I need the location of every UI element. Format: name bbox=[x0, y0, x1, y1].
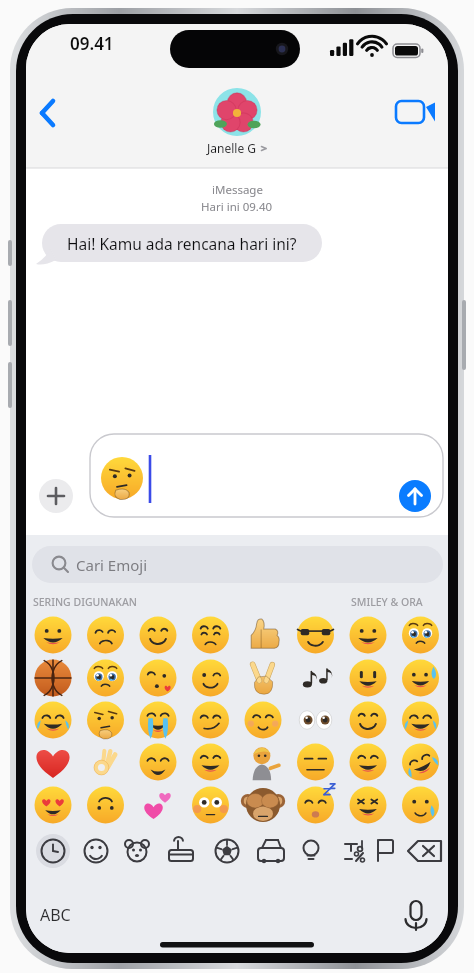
staticText: Hai! Kamu ada rencana hari ini? bbox=[67, 233, 297, 254]
button[interactable]: Back bbox=[28, 96, 64, 132]
staticText: 09.41 bbox=[70, 32, 114, 55]
button[interactable]: FaceTime video call bbox=[392, 96, 436, 130]
button[interactable]: Dictation bbox=[398, 896, 434, 932]
button[interactable]: Hai! Kamu ada rencana hari ini? bbox=[42, 224, 322, 262]
staticText: SMILEY & ORA bbox=[351, 595, 423, 609]
button[interactable]: Cari Emoji bbox=[32, 546, 443, 583]
button[interactable]: Send bbox=[399, 480, 431, 512]
staticText: iMessage bbox=[212, 182, 263, 198]
button[interactable]: Recently used emoji bbox=[36, 834, 70, 868]
button[interactable]: Animals and nature bbox=[120, 834, 154, 868]
staticText: Janelle G bbox=[207, 140, 257, 156]
staticText: ABC bbox=[40, 904, 71, 926]
staticText: Hari ini 09.40 bbox=[201, 199, 273, 215]
button[interactable]: Flags bbox=[374, 834, 404, 864]
button[interactable]: Food and drink bbox=[164, 834, 198, 868]
staticText: SERING DIGUNAKAN bbox=[33, 595, 137, 609]
button[interactable]: Janelle G bbox=[185, 140, 289, 156]
button[interactable]: Activity bbox=[210, 834, 244, 868]
button[interactable]: Contact photo bbox=[213, 88, 261, 136]
button[interactable]: Smileys and people bbox=[79, 834, 113, 868]
staticText: Cari Emoji bbox=[76, 555, 148, 575]
button[interactable]: Symbols bbox=[337, 834, 371, 868]
button[interactable]: Add attachment bbox=[39, 479, 73, 513]
button[interactable]: Delete bbox=[405, 836, 445, 866]
button[interactable]: ABC bbox=[40, 900, 104, 930]
button[interactable]: Message field bbox=[90, 434, 443, 517]
button[interactable]: Objects bbox=[294, 834, 328, 868]
button[interactable]: Travel and places bbox=[254, 834, 288, 868]
